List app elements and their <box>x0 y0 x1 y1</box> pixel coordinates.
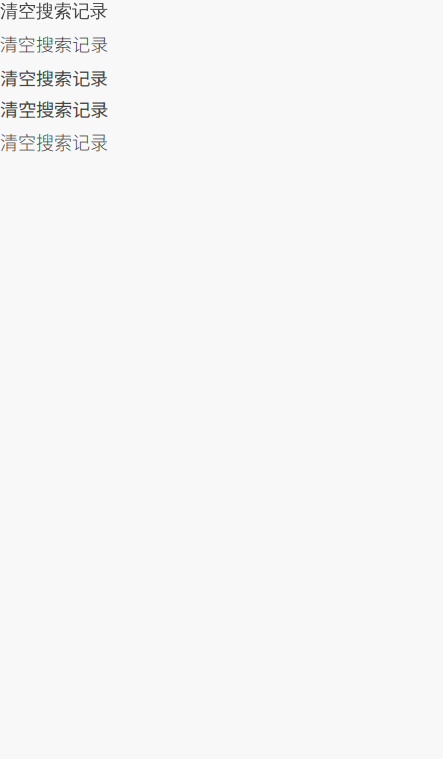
staticText: 清空搜索记录 <box>0 31 108 57</box>
staticText: 清空搜索记录 <box>0 99 108 120</box>
staticText: 清空搜索记录 <box>0 65 108 91</box>
staticText: 清空搜索记录 <box>0 0 108 23</box>
staticText: 清空搜索记录 <box>0 128 108 155</box>
